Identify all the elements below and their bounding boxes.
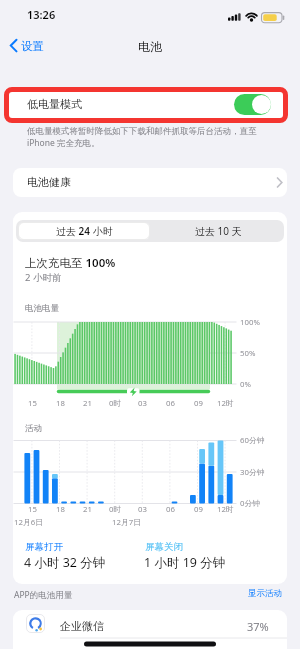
staticText: 企业微信 <box>60 619 104 633</box>
staticText: 设置 <box>21 39 44 53</box>
button[interactable] <box>18 222 150 240</box>
staticText: 09 <box>194 398 203 409</box>
staticText: 100% <box>240 317 260 328</box>
staticText: 13:26 <box>27 7 56 22</box>
staticText: 2 小时前 <box>25 271 62 284</box>
staticText: 37% <box>247 619 269 634</box>
button[interactable] <box>234 94 271 115</box>
staticText: 显示活动 <box>248 588 282 599</box>
staticText: 09 <box>194 504 203 515</box>
button[interactable] <box>13 610 287 649</box>
staticText: 21 <box>83 504 92 515</box>
staticText: 30分钟 <box>240 467 265 478</box>
staticText: 屏幕打开 <box>25 541 63 553</box>
staticText: 低电量模式 <box>27 97 82 111</box>
staticText: 4 小时 32 分钟 <box>24 554 106 571</box>
staticText: 0分钟 <box>240 498 261 509</box>
button[interactable] <box>152 222 284 240</box>
staticText: 电池电量 <box>25 303 59 314</box>
staticText: 12时 <box>217 504 234 515</box>
staticText: 15 <box>28 504 37 515</box>
staticText: 电池 <box>138 39 162 54</box>
staticText: 21 <box>83 398 92 409</box>
staticText: 0时 <box>109 504 122 515</box>
staticText: APP的电池用量 <box>14 589 73 601</box>
staticText: 18 <box>56 504 65 515</box>
button[interactable] <box>20 37 56 55</box>
staticText: 60分钟 <box>240 435 265 446</box>
staticText: 屏幕关闭 <box>145 541 183 553</box>
button[interactable] <box>9 92 283 118</box>
staticText: 18 <box>56 398 65 409</box>
staticText: 电池健康 <box>27 175 71 189</box>
staticText: 50% <box>240 348 256 359</box>
staticText: 12时 <box>217 398 234 409</box>
staticText: 0时 <box>109 398 122 409</box>
staticText: 1 小时 19 分钟 <box>144 554 226 571</box>
staticText: 06 <box>166 398 175 409</box>
staticText: 15 <box>28 398 37 409</box>
staticText: 12月6日 <box>14 517 43 528</box>
staticText: 12月7日 <box>112 517 141 528</box>
staticText: 03 <box>138 398 147 409</box>
staticText: 低电量模式将暂时降低如下下载和邮件抓取等后台活动，直至 iPhone 完全充电。 <box>27 126 257 148</box>
staticText: 03 <box>138 504 147 515</box>
button[interactable] <box>13 168 287 197</box>
staticText: 过去 24 小时 <box>56 224 113 238</box>
staticText: 上次充电至 100% <box>25 255 116 271</box>
button[interactable]: 显示活动 <box>248 588 288 602</box>
staticText: 过去 10 天 <box>195 224 242 238</box>
staticText: 0% <box>240 379 251 390</box>
staticText: 06 <box>166 504 175 515</box>
staticText: 活动 <box>25 423 42 434</box>
